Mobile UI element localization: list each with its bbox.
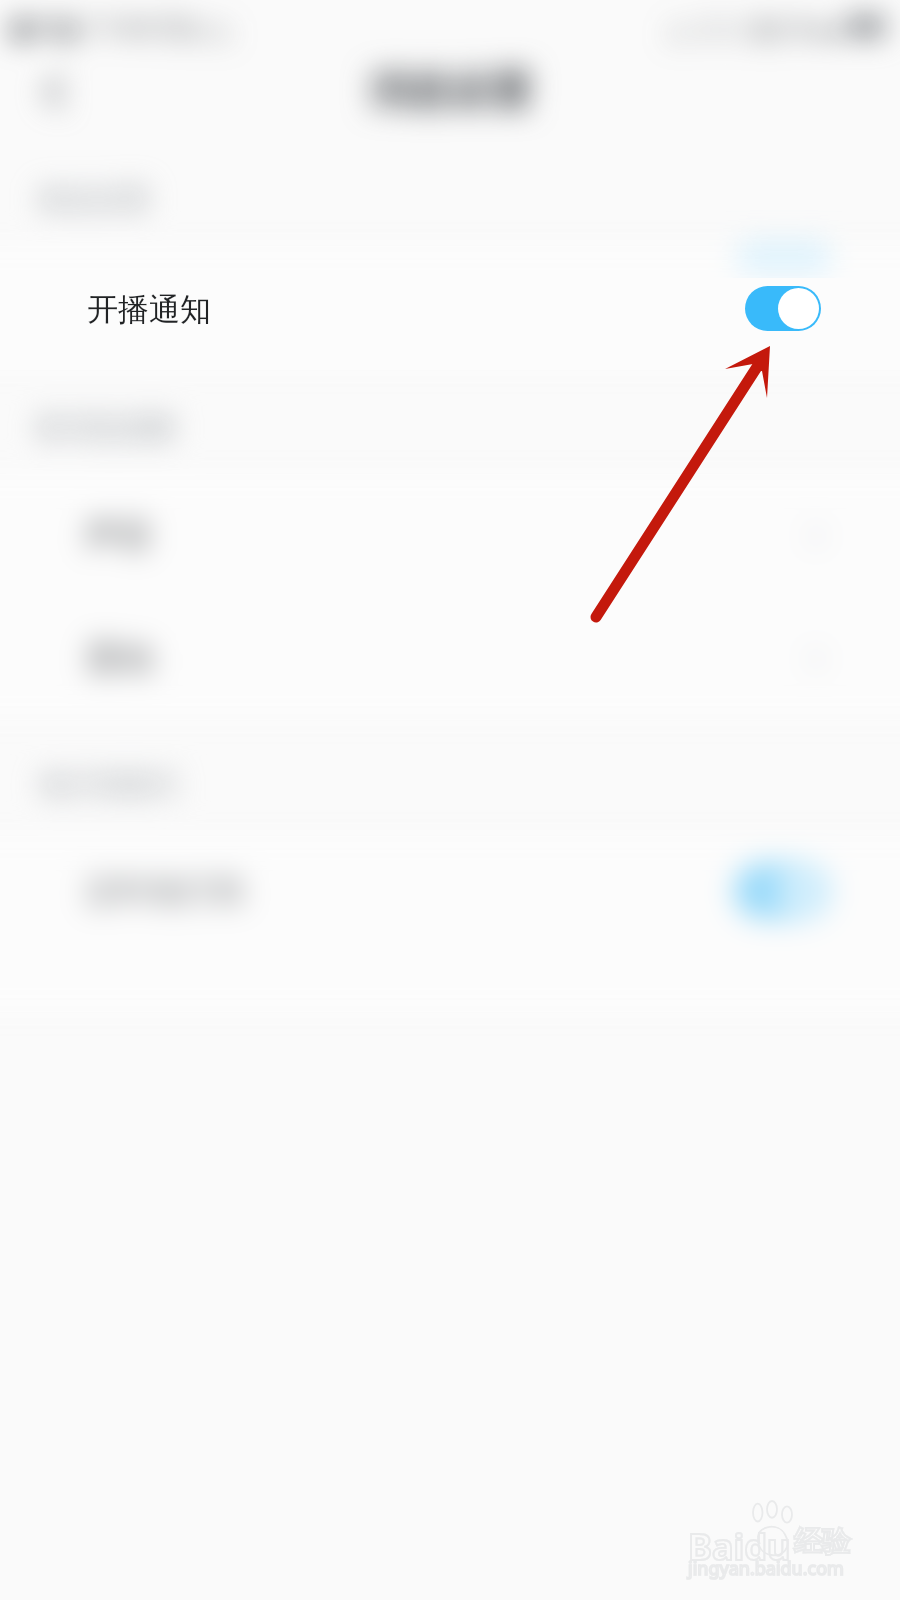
staticText: ●✉▣ 17:40 ☰◎ △ <box>10 9 232 44</box>
staticText: jingyan.baidu.com <box>688 1556 844 1581</box>
staticText: 定时免打扰 <box>85 871 245 911</box>
staticText: Baidu <box>688 1522 791 1571</box>
staticText: 经验 <box>794 1524 850 1559</box>
button[interactable]: 定时免打扰 <box>0 836 900 946</box>
button[interactable]: Back <box>16 52 96 132</box>
staticText: 声音 <box>85 514 153 557</box>
staticText: 新消息提醒 <box>36 410 176 445</box>
staticText: △ ♫ ○ ▤ ◔ ▴▴ <box>668 9 842 44</box>
staticText: 震动 <box>85 637 153 680</box>
staticText: 免打扰模式 <box>38 767 178 802</box>
staticText: 消息设置 <box>368 66 532 118</box>
button[interactable]: Do-not-disturb switch, on <box>734 863 830 919</box>
button[interactable]: 开播通知 <box>0 246 900 370</box>
button[interactable]: 震动 <box>0 597 900 720</box>
staticText: 开播通知 <box>87 290 211 329</box>
button[interactable]: 声音 <box>0 474 900 597</box>
button[interactable]: 开播通知 switch, on <box>745 286 821 331</box>
